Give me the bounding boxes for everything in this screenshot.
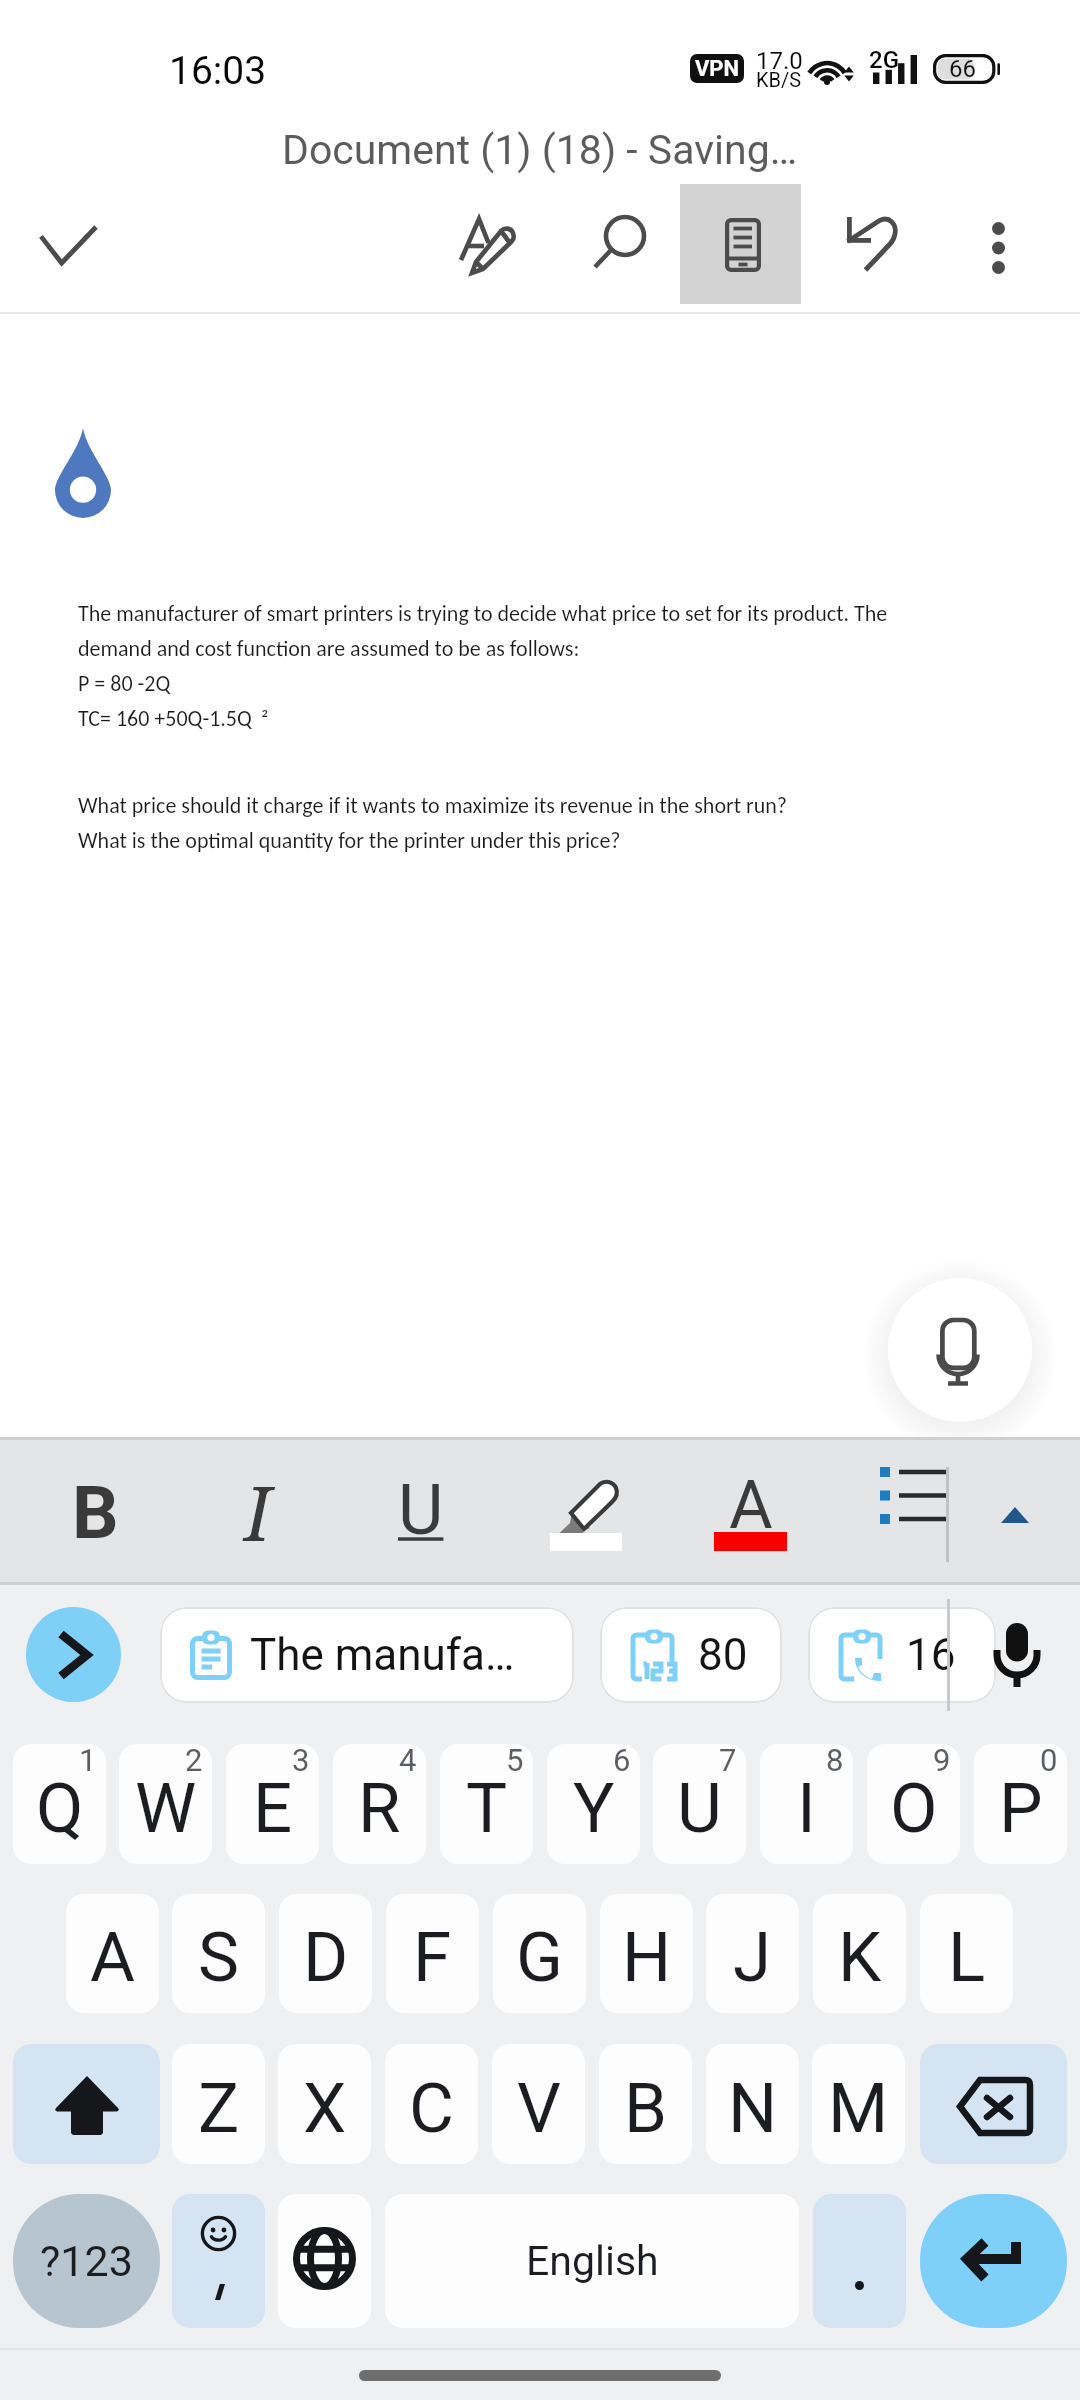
button[interactable]: W [119, 1744, 212, 1864]
button[interactable]: A [66, 1894, 159, 2013]
button[interactable]: X [278, 2044, 371, 2164]
button[interactable]: P [974, 1744, 1067, 1864]
staticText: X [303, 2068, 347, 2149]
button[interactable]: R [333, 1744, 426, 1864]
button[interactable]: Emoji [172, 2194, 265, 2328]
button[interactable]: Q [13, 1744, 106, 1864]
staticText: N [728, 2068, 778, 2149]
button[interactable]: The manufa… [160, 1607, 574, 1703]
staticText: Q [36, 1768, 84, 1849]
button[interactable]: K [813, 1894, 906, 2013]
staticText: Document (1) (18) - Saving… [282, 126, 798, 174]
staticText: M [828, 2068, 889, 2149]
button[interactable]: G [493, 1894, 586, 2013]
staticText: 2 [185, 1744, 203, 1778]
staticText: B [72, 1470, 119, 1556]
button[interactable]: ?123 [13, 2194, 160, 2328]
button[interactable]: O [867, 1744, 960, 1864]
button[interactable]: M [812, 2044, 905, 2164]
staticText: 16:03 [169, 48, 267, 94]
staticText: 4 [399, 1744, 417, 1778]
button[interactable]: Bulleted list [846, 1440, 964, 1585]
button[interactable]: U [653, 1744, 746, 1864]
button[interactable]: Search [559, 184, 679, 304]
button[interactable]: C [385, 2044, 478, 2164]
button[interactable]: Format text [427, 184, 547, 304]
button[interactable]: More options [938, 188, 1058, 308]
button[interactable]: T [440, 1744, 533, 1864]
staticText: 9 [933, 1744, 951, 1778]
staticText: 1 [79, 1744, 97, 1778]
button[interactable]: Done [9, 184, 129, 304]
button[interactable]: Highlight [520, 1440, 650, 1585]
staticText: E [253, 1768, 293, 1849]
staticText: A [90, 1917, 136, 1998]
staticText: 6 [613, 1744, 631, 1778]
button[interactable]: V [492, 2044, 585, 2164]
button[interactable]: Undo [810, 184, 930, 304]
staticText: D [303, 1917, 349, 1998]
staticText: S [198, 1917, 239, 1998]
button[interactable]: Text colour [685, 1437, 815, 1585]
button[interactable]: D [279, 1894, 372, 2013]
staticText: Y [573, 1768, 615, 1849]
staticText: 7 [719, 1744, 737, 1778]
staticText: T [466, 1768, 508, 1849]
staticText: 0 [1040, 1744, 1058, 1778]
button[interactable]: I [193, 1440, 323, 1585]
staticText: O [890, 1768, 938, 1849]
button[interactable]: E [226, 1744, 319, 1864]
staticText: 3 [292, 1744, 310, 1778]
staticText: VPN [695, 56, 740, 82]
button[interactable]: B [599, 2044, 692, 2164]
button[interactable]: Backspace [920, 2044, 1067, 2164]
staticText: C [409, 2068, 454, 2149]
button[interactable]: I [760, 1744, 853, 1864]
staticText: R [358, 1768, 401, 1849]
staticText: L [948, 1917, 986, 1998]
staticText: What price should it charge if it wants … [78, 792, 787, 819]
button[interactable]: L [920, 1894, 1013, 2013]
button[interactable]: Shift [13, 2044, 160, 2164]
button[interactable]: Enter [920, 2194, 1067, 2328]
button[interactable]: S [172, 1894, 265, 2013]
button[interactable]: Y [547, 1744, 640, 1864]
button[interactable]: Expand suggestions [26, 1607, 121, 1702]
staticText: 17.0 [756, 47, 803, 75]
staticText: 8 [826, 1744, 844, 1778]
button[interactable]: Voice input [888, 1278, 1032, 1422]
button[interactable]: H [600, 1894, 693, 2013]
button[interactable]: Voice typing [956, 1597, 1078, 1713]
staticText: 80 [698, 1629, 748, 1681]
staticText: TC= 160 +50Q-1.5Q [78, 705, 252, 732]
button[interactable]: Change language [278, 2194, 371, 2328]
staticText: J [733, 1917, 772, 1998]
staticText: G [516, 1917, 563, 1998]
staticText: W [135, 1768, 197, 1849]
staticText: English [526, 2237, 659, 2285]
staticText: A [729, 1466, 773, 1545]
button[interactable]: 16 [808, 1607, 996, 1703]
button[interactable]: B [30, 1440, 160, 1585]
button[interactable]: Period [813, 2194, 906, 2328]
staticText: K [838, 1917, 882, 1998]
staticText: What is the optimal quantity for the pri… [78, 827, 621, 854]
button[interactable]: English [385, 2194, 799, 2328]
staticText: P [999, 1768, 1043, 1849]
button[interactable]: N [706, 2044, 799, 2164]
button[interactable]: J [706, 1894, 799, 2013]
staticText: KB/S [756, 68, 802, 91]
button[interactable]: Collapse toolbar [950, 1440, 1080, 1585]
button[interactable]: F [386, 1894, 479, 2013]
button[interactable]: View mode [680, 184, 801, 304]
staticText: ?123 [40, 2236, 133, 2286]
staticText: 5 [506, 1744, 524, 1778]
staticText: 16 [906, 1629, 956, 1681]
staticText: demand and cost function are assumed to … [78, 635, 580, 662]
button[interactable]: Z [172, 2044, 265, 2164]
staticText: 66 [949, 55, 976, 83]
button[interactable]: 80 [600, 1607, 782, 1703]
staticText: I [797, 1768, 816, 1849]
staticText: 2G [869, 46, 899, 74]
button[interactable]: U [356, 1440, 486, 1585]
